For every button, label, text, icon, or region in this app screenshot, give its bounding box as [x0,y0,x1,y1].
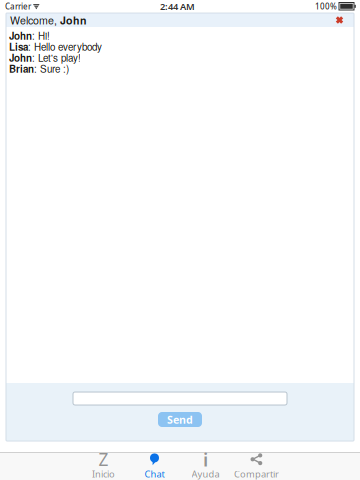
staticText: i [203,447,208,472]
button[interactable]: Send [158,412,202,427]
staticText: Send [167,412,193,427]
staticText: Ayuda [191,468,219,480]
staticText: Carrier [5,1,31,12]
staticText: Welcome, John [10,12,87,27]
button[interactable]: Compartir [231,453,282,480]
staticText: Compartir [234,468,279,480]
staticText: 100% [315,1,337,12]
button[interactable]: Z [78,453,129,480]
button[interactable]: Close [335,15,344,24]
staticText: Inicio [92,468,115,480]
staticText: Z [98,448,108,471]
button[interactable]: i [180,453,231,480]
staticText: 2:44 AM [160,0,195,13]
staticText: Brian: Sure :) [9,61,69,75]
staticText: Chat [144,468,164,480]
button[interactable]: Chat [129,453,180,480]
staticText: John: Let's play! [9,50,81,64]
staticText: John: Hi! [9,28,50,42]
staticText: Lisa: Hello everybody [9,39,102,53]
